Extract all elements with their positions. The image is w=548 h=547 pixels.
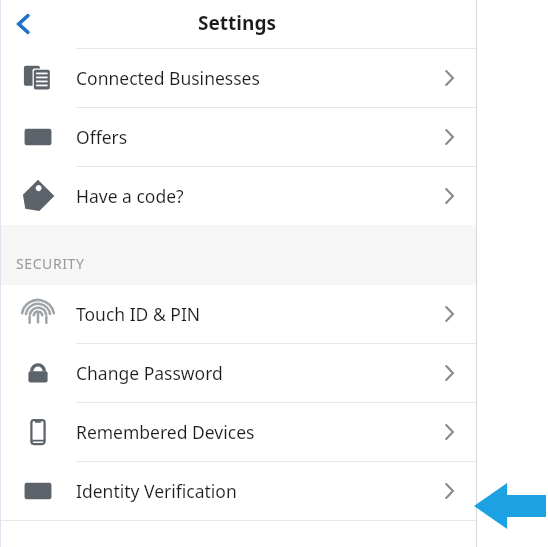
button[interactable]: Touch ID & PIN — [0, 285, 476, 343]
staticText: Connected Businesses — [76, 66, 260, 90]
staticText: Offers — [76, 125, 128, 149]
button[interactable]: Remembered Devices — [0, 403, 476, 461]
button[interactable]: Have a code? — [0, 167, 476, 225]
button[interactable]: Connected Businesses — [0, 49, 476, 107]
button[interactable]: Offers — [0, 108, 476, 166]
button[interactable]: Back — [0, 0, 48, 48]
button[interactable]: Change Password — [0, 344, 476, 402]
button[interactable]: Identity Verification — [0, 462, 476, 520]
staticText: Change Password — [76, 361, 223, 385]
staticText: Touch ID & PIN — [76, 302, 201, 326]
staticText: Remembered Devices — [76, 420, 255, 444]
staticText: SECURITY — [16, 254, 85, 273]
staticText: Settings — [198, 10, 276, 36]
staticText: Identity Verification — [76, 479, 237, 503]
staticText: Have a code? — [76, 184, 184, 208]
